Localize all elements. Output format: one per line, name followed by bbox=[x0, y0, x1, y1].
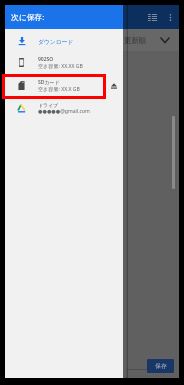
staticText: 次に保存: bbox=[11, 12, 45, 23]
staticText: SDカード bbox=[38, 79, 60, 86]
button[interactable]: ドライブ bbox=[5, 97, 123, 120]
button[interactable]: ダウンロード bbox=[5, 31, 123, 51]
staticText: ドライブ bbox=[38, 102, 59, 108]
staticText: 保存 bbox=[155, 362, 167, 370]
staticText: ●●●●●@gmail.com bbox=[38, 108, 90, 115]
button[interactable]: List view bbox=[144, 5, 160, 29]
button[interactable]: More options bbox=[163, 5, 177, 29]
button[interactable]: Eject SD card bbox=[109, 81, 119, 91]
button[interactable]: 保存 bbox=[147, 359, 174, 373]
staticText: 空き容量: XX.X GB bbox=[38, 86, 80, 93]
staticText: 902SO bbox=[38, 56, 54, 63]
staticText: 更新順 bbox=[124, 36, 147, 45]
staticText: 空き容量: XX.XX GB bbox=[38, 63, 83, 70]
button[interactable]: SDカード bbox=[5, 74, 123, 97]
staticText: ダウンロード bbox=[38, 38, 74, 45]
button[interactable]: 902SO bbox=[5, 51, 123, 74]
button[interactable]: 更新順 bbox=[124, 29, 170, 51]
